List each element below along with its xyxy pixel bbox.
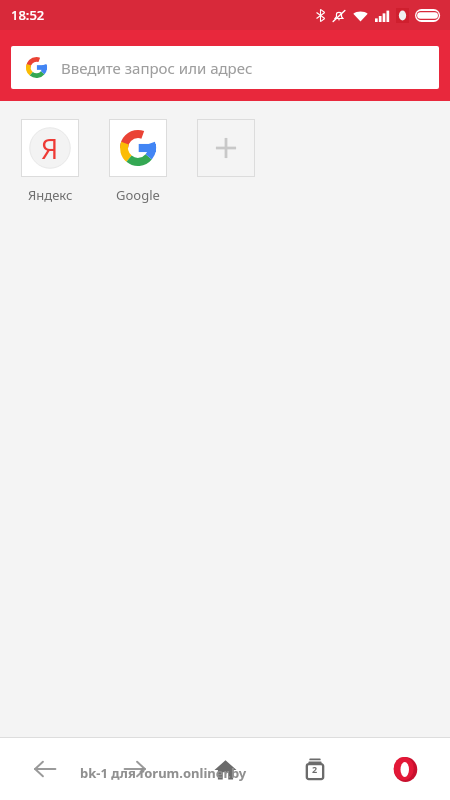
staticText: 18:52 bbox=[11, 6, 45, 24]
button[interactable]: Opera menu bbox=[360, 738, 450, 800]
staticText: Я bbox=[41, 130, 59, 167]
staticText: Яндекс bbox=[28, 186, 73, 204]
button[interactable]: Back bbox=[0, 738, 90, 800]
button[interactable]: Home bbox=[180, 738, 270, 800]
button[interactable] bbox=[109, 119, 167, 177]
staticText: Введите запрос или адрес bbox=[61, 58, 253, 78]
button[interactable]: Я bbox=[21, 119, 79, 177]
button[interactable]: Введите запрос или адрес bbox=[11, 46, 439, 89]
staticText: Google bbox=[116, 186, 160, 204]
staticText: bk-1 для forum.onliner.by bbox=[80, 764, 247, 782]
staticText: 2 bbox=[312, 763, 318, 775]
button[interactable]: Add speed dial bbox=[197, 119, 255, 177]
button[interactable]: Tabs bbox=[270, 738, 360, 800]
button[interactable]: Forward bbox=[90, 738, 180, 800]
